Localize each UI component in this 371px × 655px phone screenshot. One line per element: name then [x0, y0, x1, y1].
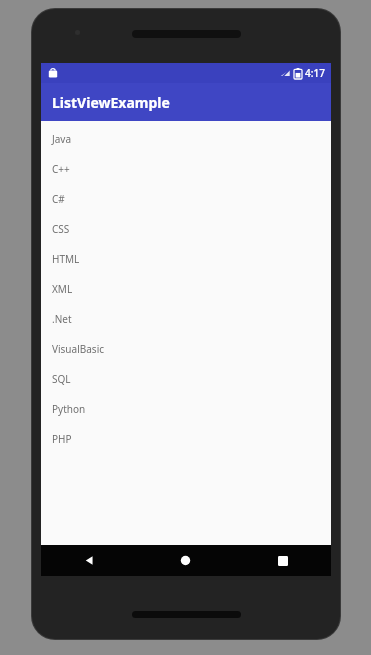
staticText: ListViewExample	[52, 93, 170, 112]
staticText: CSS	[52, 222, 70, 236]
staticText: Java	[52, 132, 72, 146]
button[interactable]: Home	[137, 545, 234, 576]
staticText: C++	[52, 162, 70, 176]
staticText: VisualBasic	[52, 342, 105, 356]
staticText: SQL	[52, 372, 71, 386]
button[interactable]: PHP	[41, 424, 331, 454]
button[interactable]: C++	[41, 154, 331, 184]
staticText: PHP	[52, 432, 72, 446]
button[interactable]: Recent apps	[234, 545, 331, 576]
staticText: .Net	[52, 312, 72, 326]
button[interactable]: .Net	[41, 304, 331, 334]
staticText: C#	[52, 192, 65, 206]
button[interactable]: XML	[41, 274, 331, 304]
button[interactable]: Python	[41, 394, 331, 424]
button[interactable]: VisualBasic	[41, 334, 331, 364]
button[interactable]: HTML	[41, 244, 331, 274]
button[interactable]: Back	[41, 545, 137, 576]
button[interactable]: C#	[41, 184, 331, 214]
staticText: HTML	[52, 252, 80, 266]
staticText: XML	[52, 282, 73, 296]
staticText: 4:17	[305, 66, 325, 80]
button[interactable]: Java	[41, 124, 331, 154]
staticText: Python	[52, 402, 86, 416]
button[interactable]: SQL	[41, 364, 331, 394]
button[interactable]: CSS	[41, 214, 331, 244]
